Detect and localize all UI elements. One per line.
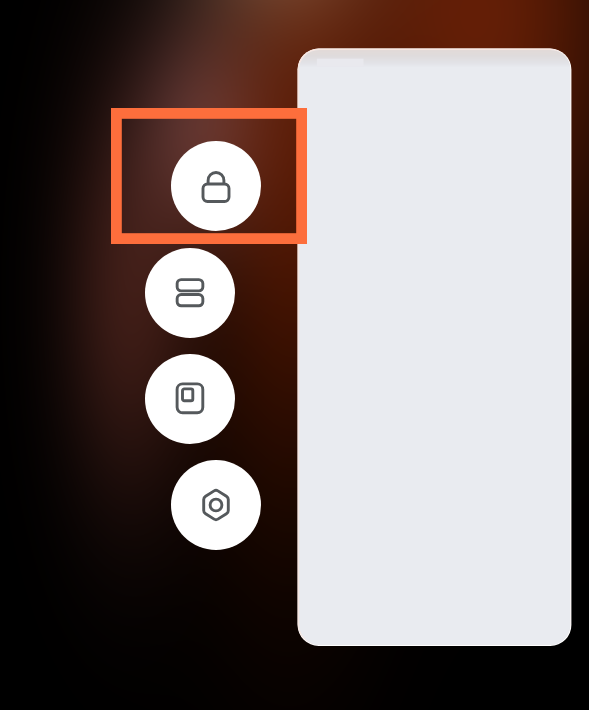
button[interactable]: Lock screen: [171, 141, 261, 231]
button[interactable]: Pop-up view: [145, 354, 235, 444]
button[interactable]: Selected item highlight: [111, 108, 307, 244]
button[interactable]: Settings: [171, 460, 261, 550]
button[interactable]: Split screen: [145, 248, 235, 338]
